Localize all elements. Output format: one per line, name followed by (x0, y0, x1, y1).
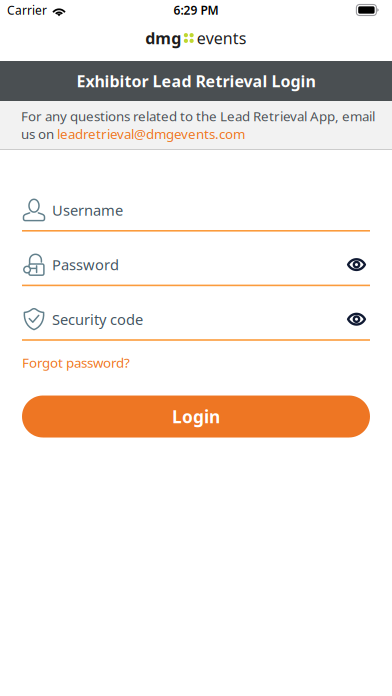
button[interactable]: Show Security code (335, 307, 370, 332)
staticText: 6:29 PM (173, 2, 218, 18)
staticText: Forgot password? (22, 354, 130, 371)
staticText: Carrier (7, 2, 47, 18)
staticText: For any questions related to the Lead Re… (21, 107, 375, 143)
staticText: Login (172, 405, 220, 428)
staticText: Security code (52, 309, 143, 329)
staticText: dmg (145, 27, 181, 49)
staticText: Password (52, 255, 119, 274)
staticText: Username (52, 200, 123, 220)
staticText: Exhibitor Lead Retrieval Login (76, 70, 315, 92)
button[interactable]: Login (22, 395, 370, 437)
button[interactable]: Show Password (335, 252, 370, 277)
button[interactable]: Forgot password? (22, 352, 130, 373)
staticText: events (197, 27, 247, 49)
